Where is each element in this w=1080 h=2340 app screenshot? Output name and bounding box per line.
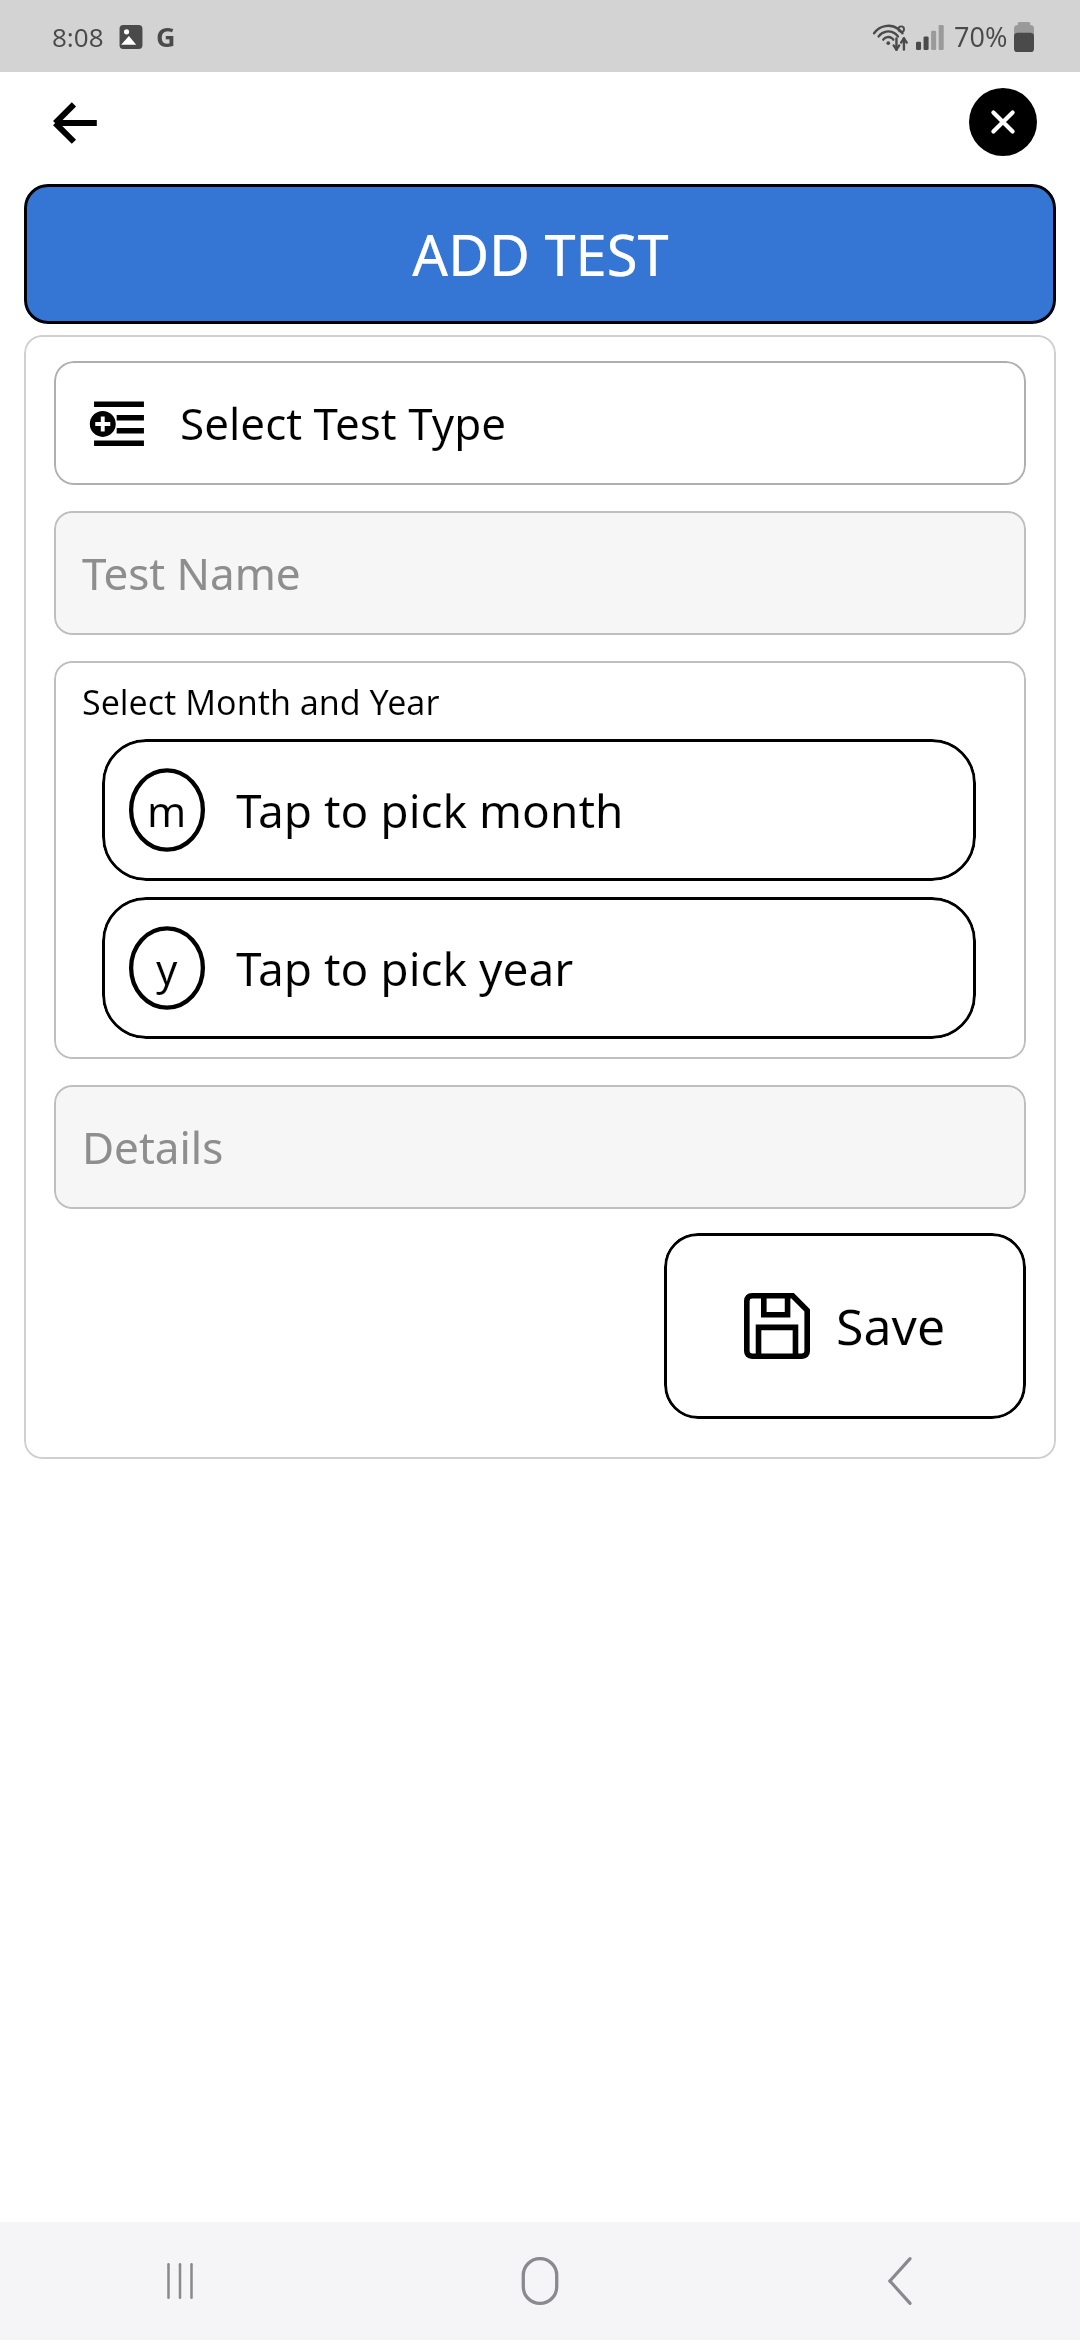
staticText: y	[156, 940, 178, 997]
staticText: ADD TEST	[412, 216, 669, 292]
button[interactable]: y	[102, 897, 976, 1039]
button[interactable]: Select Test Type	[54, 361, 1026, 485]
button[interactable]: Recents	[0, 2222, 360, 2340]
staticText: Select Test Type	[180, 393, 507, 453]
button[interactable]: Back	[30, 76, 122, 168]
button[interactable]: Details	[54, 1085, 1026, 1209]
button[interactable]: Home	[360, 2222, 720, 2340]
staticText: m	[147, 782, 187, 839]
staticText: Tap to pick year	[236, 937, 574, 1000]
button[interactable]: Back	[720, 2222, 1080, 2340]
button[interactable]: Test Name	[54, 511, 1026, 635]
staticText: Tap to pick month	[236, 779, 624, 842]
staticText: Test Name	[82, 543, 301, 603]
staticText: Details	[82, 1117, 224, 1177]
staticText: Save	[836, 1292, 946, 1360]
staticText: G	[156, 18, 176, 55]
button[interactable]: Close	[969, 88, 1037, 156]
staticText: Select Month and Year	[82, 679, 440, 725]
button[interactable]: m	[102, 739, 976, 881]
button[interactable]: ADD TEST	[24, 184, 1056, 324]
staticText: 70%	[954, 18, 1008, 55]
button[interactable]: Save	[744, 1292, 946, 1360]
staticText: 8:08	[52, 19, 104, 54]
